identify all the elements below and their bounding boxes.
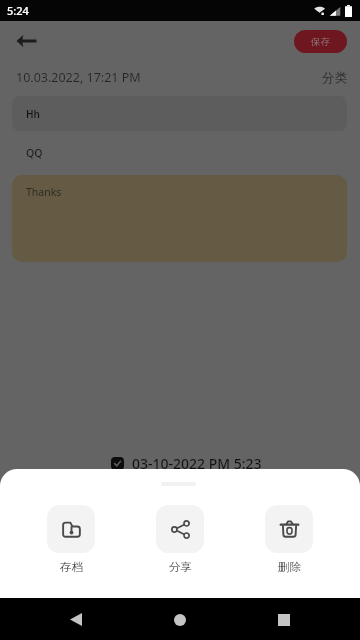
staticText: 03-10-2022 PM 5:23 bbox=[132, 454, 262, 473]
staticText: 分享 bbox=[169, 560, 192, 574]
button[interactable]: 分类 bbox=[322, 70, 347, 86]
button[interactable]: Back bbox=[58, 602, 93, 637]
button[interactable]: Archive bbox=[47, 505, 95, 574]
button[interactable]: Recent apps bbox=[266, 602, 301, 637]
staticText: 5:24 bbox=[7, 3, 29, 18]
button[interactable]: Share bbox=[156, 505, 204, 574]
staticText: Thanks bbox=[26, 185, 62, 199]
button[interactable]: Hh bbox=[12, 96, 347, 131]
staticText: Hh bbox=[26, 107, 40, 121]
button[interactable]: Home bbox=[162, 602, 197, 637]
button[interactable]: Delete bbox=[265, 505, 313, 574]
staticText: 删除 bbox=[278, 560, 301, 574]
button[interactable]: QQ bbox=[26, 146, 43, 160]
staticText: 存档 bbox=[60, 560, 83, 574]
button[interactable]: Back bbox=[10, 25, 42, 57]
button[interactable]: 保存 bbox=[294, 30, 347, 53]
staticText: 保存 bbox=[311, 36, 330, 48]
staticText: 10.03.2022, 17:21 PM bbox=[16, 69, 141, 86]
